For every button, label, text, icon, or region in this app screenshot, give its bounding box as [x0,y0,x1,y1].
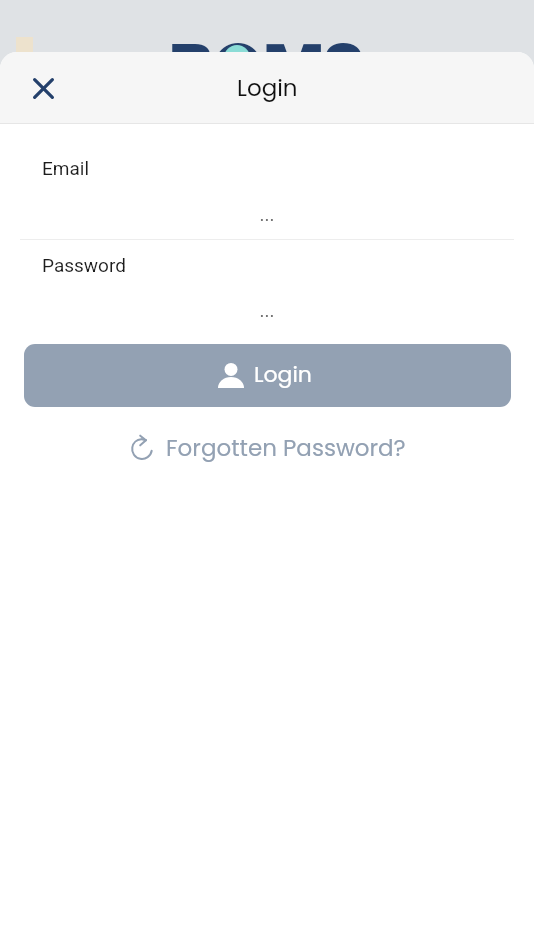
staticText: Forgotten Password? [166,432,406,464]
button[interactable]: Email [0,142,534,239]
staticText: Password [42,254,126,276]
staticText: Email [42,157,90,179]
button[interactable]: Password [0,240,534,337]
button[interactable]: Forgotten Password? [0,424,534,472]
staticText: ... [259,299,275,321]
staticText: Login [237,72,298,104]
staticText: BOMS [169,23,365,113]
staticText: ... [259,203,275,225]
button[interactable]: Close [20,65,66,111]
staticText: Login [254,359,312,390]
button[interactable]: Login [24,344,511,407]
